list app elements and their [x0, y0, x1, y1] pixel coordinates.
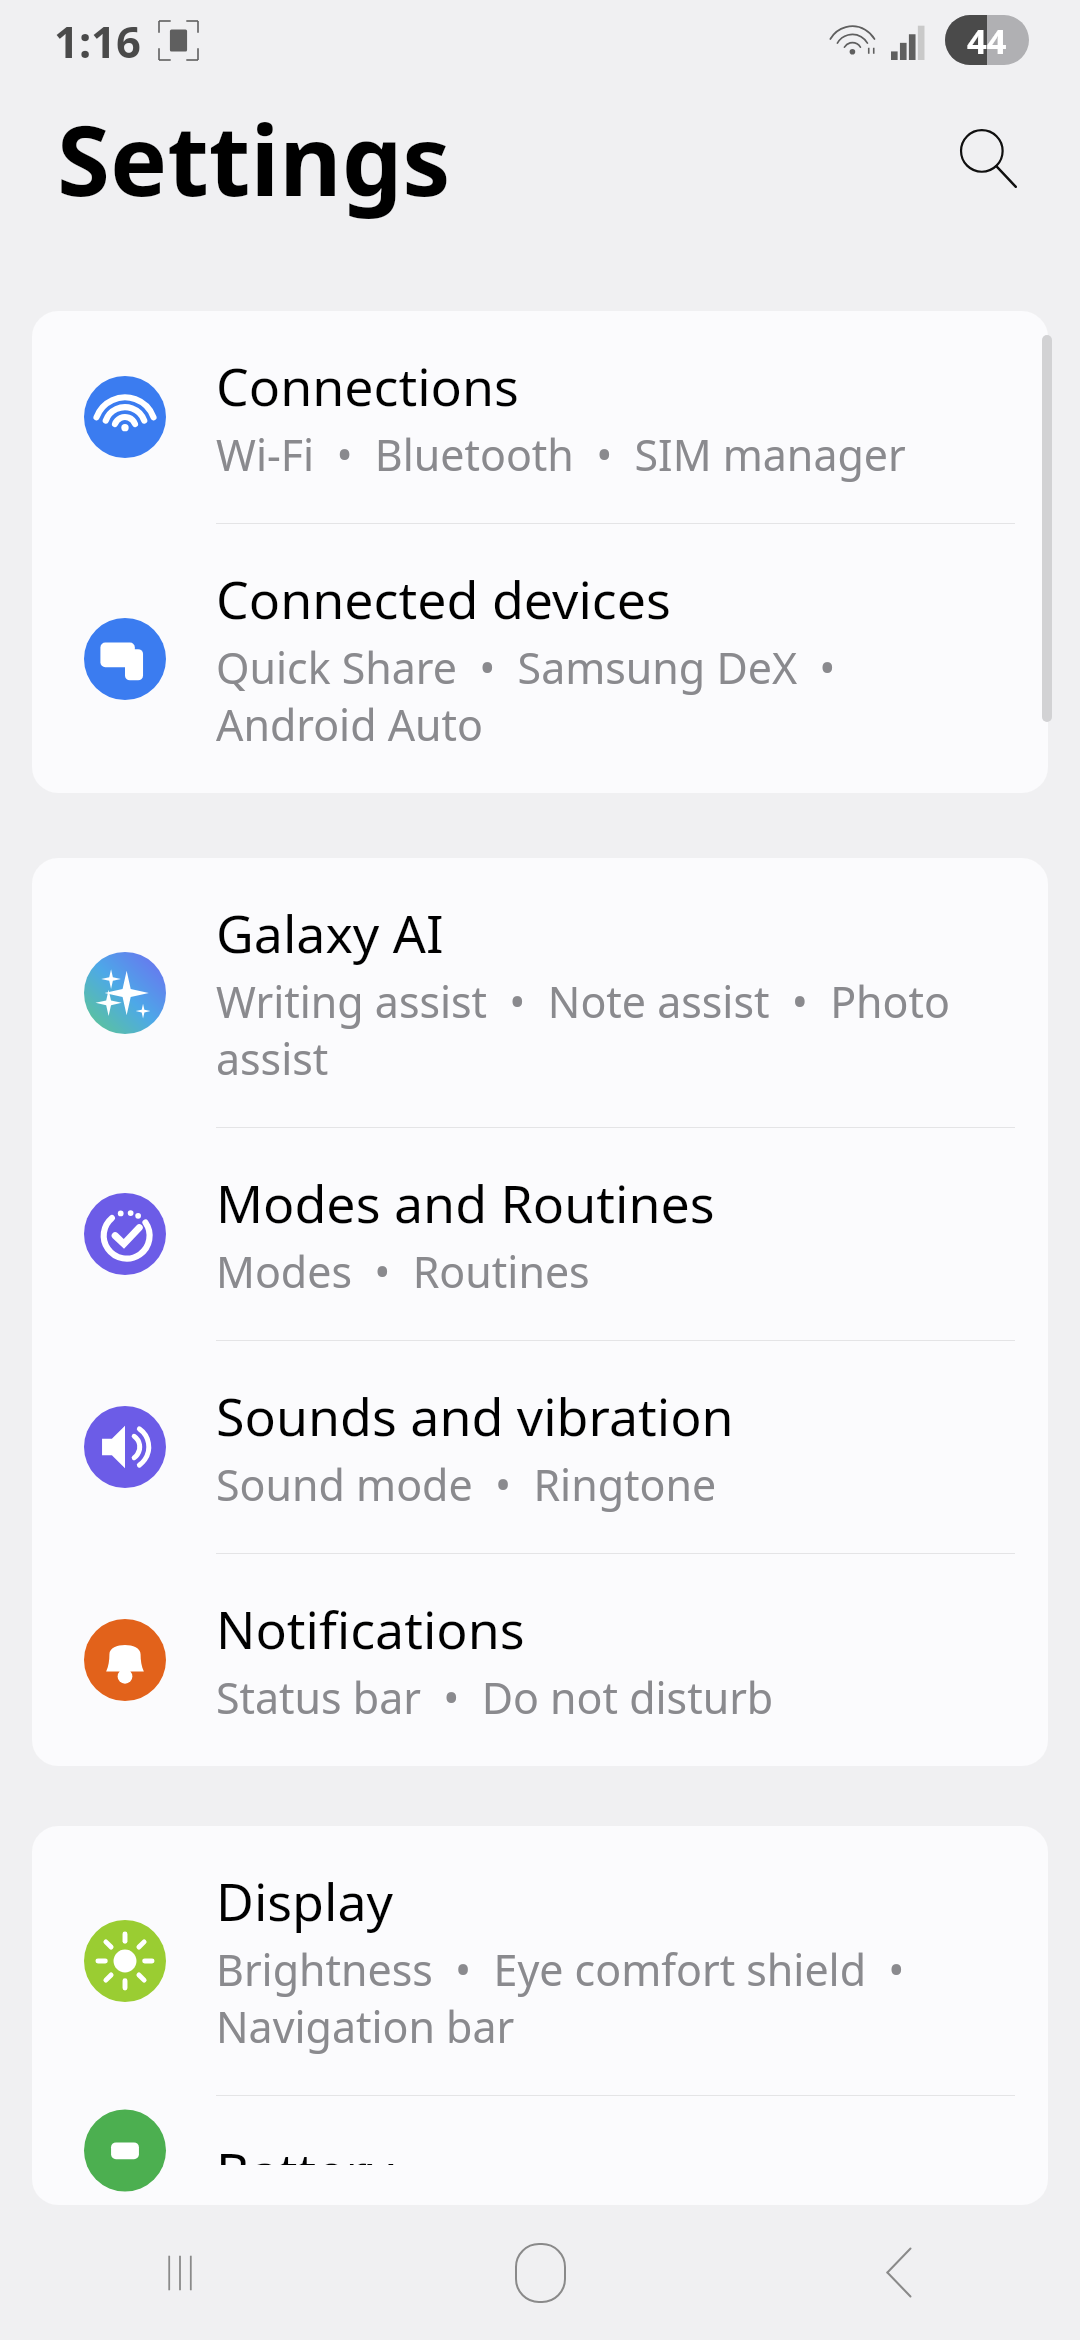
staticText: Galaxy AI	[216, 898, 444, 969]
staticText: Display	[216, 1866, 393, 1937]
staticText: Sounds and vibration	[216, 1381, 734, 1452]
button[interactable]: Recents	[0, 2205, 360, 2340]
button[interactable]: Notifications	[32, 1554, 1048, 1766]
staticText: Wi-Fi • Bluetooth • SIM manager	[216, 425, 906, 483]
staticText: 44	[967, 17, 1007, 64]
button[interactable]: Display	[32, 1826, 1048, 2095]
button[interactable]: Search	[930, 101, 1044, 215]
staticText: Battery	[216, 2136, 394, 2165]
staticText: Writing assist • Note assist • Photo ass…	[216, 972, 1006, 1087]
staticText: Modes and Routines	[216, 1168, 715, 1239]
staticText: Notifications	[216, 1594, 525, 1665]
staticText: Brightness • Eye comfort shield • Naviga…	[216, 1940, 1006, 2055]
button[interactable]: Galaxy AI	[32, 858, 1048, 1127]
staticText: Connected devices	[216, 564, 671, 635]
staticText: 1:16	[54, 11, 141, 70]
button[interactable]: Battery	[32, 2096, 1048, 2205]
staticText: Modes • Routines	[216, 1242, 590, 1300]
button[interactable]: Modes and Routines	[32, 1128, 1048, 1340]
staticText: Quick Share • Samsung DeX • Android Auto	[216, 638, 1006, 753]
button[interactable]: Back	[720, 2205, 1080, 2340]
staticText: Status bar • Do not disturb	[216, 1668, 774, 1726]
button[interactable]: Sounds and vibration	[32, 1341, 1048, 1553]
button[interactable]: Connections	[32, 311, 1048, 523]
staticText: Settings	[57, 93, 451, 224]
staticText: Connections	[216, 351, 519, 422]
button[interactable]: Home	[360, 2205, 720, 2340]
button[interactable]: Connected devices	[32, 524, 1048, 793]
staticText: Sound mode • Ringtone	[216, 1455, 717, 1513]
